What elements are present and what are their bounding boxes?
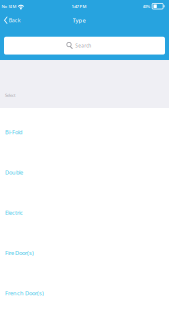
staticText: 40% — [142, 3, 150, 9]
staticText: French Door(s) — [5, 289, 44, 297]
staticText: No SIM — [1, 3, 16, 9]
button[interactable]: Electric — [0, 189, 169, 229]
staticText: Back — [9, 17, 21, 24]
button[interactable]: Search — [4, 37, 165, 55]
button[interactable]: Double — [0, 148, 169, 189]
staticText: Double — [5, 168, 23, 176]
staticText: Type — [72, 16, 85, 24]
staticText: Electric — [5, 209, 23, 216]
staticText: Search — [75, 43, 91, 49]
button[interactable]: Back — [0, 12, 27, 28]
button[interactable]: Bi-Fold — [0, 108, 169, 148]
staticText: Select — [5, 92, 15, 98]
staticText: Fire Door(s) — [5, 249, 34, 257]
button[interactable]: Fire Door(s) — [0, 229, 169, 269]
staticText: Bi-Fold — [5, 128, 22, 136]
button[interactable]: French Door(s) — [0, 269, 169, 309]
staticText: 1:47 PM — [71, 3, 86, 9]
